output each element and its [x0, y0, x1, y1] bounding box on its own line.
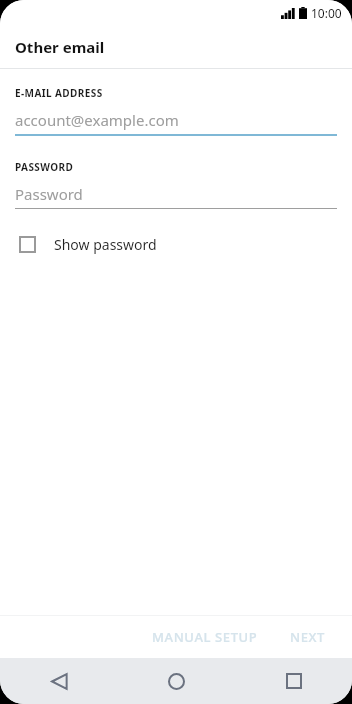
- button[interactable]: Home: [118, 658, 235, 704]
- staticText: account@example.com: [15, 110, 179, 130]
- staticText: PASSWORD: [15, 160, 74, 174]
- staticText: MANUAL SETUP: [152, 628, 258, 646]
- staticText: Show password: [54, 235, 157, 254]
- button[interactable]: MANUAL SETUP: [142, 620, 268, 654]
- staticText: NEXT: [290, 628, 325, 646]
- button[interactable]: Back: [0, 658, 118, 704]
- button[interactable]: E-mail address field: [0, 109, 352, 136]
- button[interactable]: Recent apps: [235, 658, 352, 704]
- button[interactable]: Password field: [0, 183, 352, 209]
- staticText: 10:00: [311, 5, 342, 21]
- staticText: E-MAIL ADDRESS: [15, 86, 103, 100]
- button[interactable]: NEXT: [280, 620, 335, 654]
- staticText: Other email: [15, 37, 105, 57]
- button[interactable]: Show password: [0, 227, 352, 261]
- staticText: Password: [15, 184, 83, 204]
